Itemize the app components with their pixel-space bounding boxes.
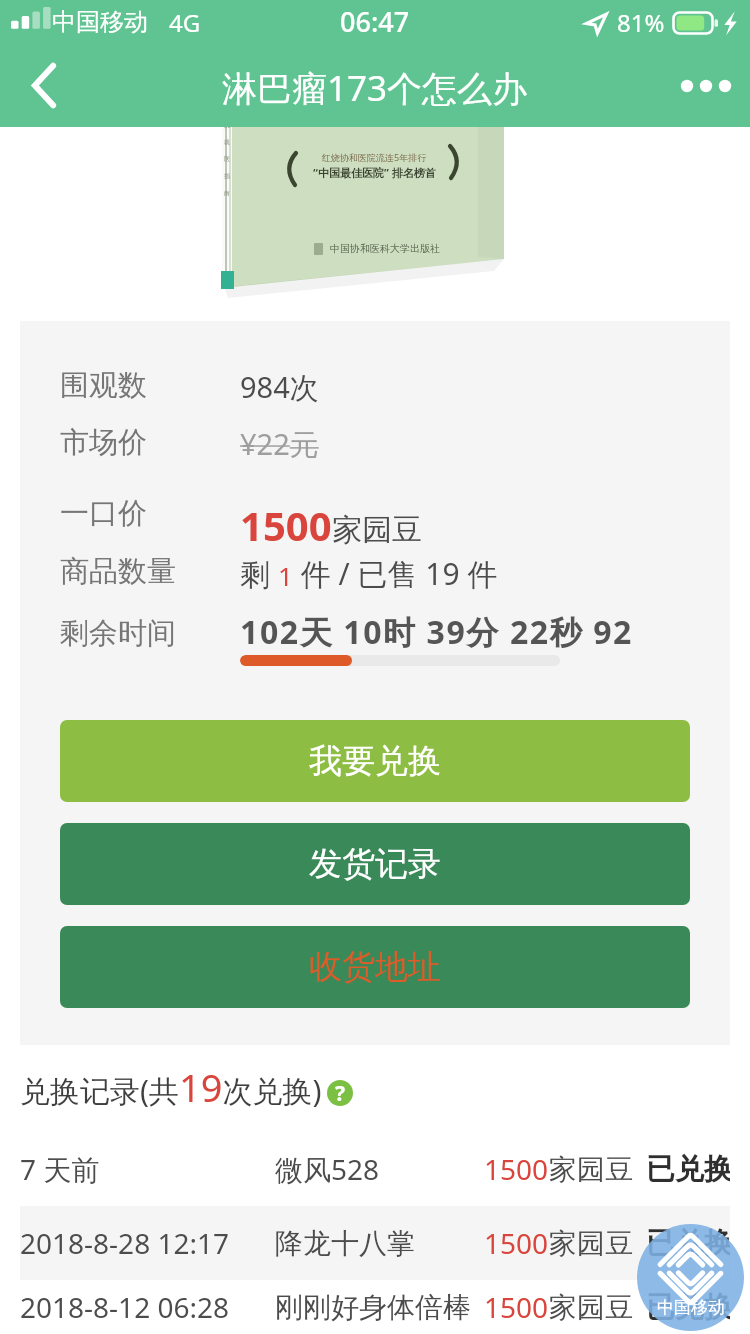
staticText: ? (335, 1080, 346, 1105)
button[interactable]: Back (0, 44, 76, 127)
staticText: 中国移动 (52, 7, 148, 37)
button[interactable]: More options (660, 44, 750, 127)
staticText: 1500 (484, 1224, 549, 1262)
staticText: 102天 10时 39分 22秒 92 (240, 610, 634, 654)
staticText: 市场价 (60, 424, 147, 461)
staticText: 商品数量 (60, 553, 176, 590)
staticText: 协 (224, 70, 230, 78)
staticText: 微风528 (275, 1150, 380, 1188)
button[interactable]: 7 天前 (20, 1132, 730, 1206)
staticText: 刚刚好身体倍棒 (275, 1290, 471, 1325)
staticText: 剩余时间 (60, 615, 176, 652)
staticText: 指 (224, 172, 230, 180)
staticText: 兑换记录(共19次兑换) (20, 1061, 322, 1113)
staticText: 2018-8-28 12:17 (20, 1224, 229, 1262)
staticText: 2018-8-12 06:28 (20, 1288, 229, 1326)
staticText: 1 (278, 558, 293, 593)
staticText: 06:47 (340, 3, 410, 40)
staticText: 1500 (484, 1150, 549, 1188)
staticText: 件 / 已售 19 件 (293, 553, 498, 594)
staticText: 家园豆 (332, 511, 422, 549)
staticText: 家园豆 (549, 1290, 633, 1325)
button[interactable]: 2018-8-12 06:28 (20, 1280, 730, 1334)
staticText: 中国协和医科大学出版社 (330, 242, 440, 255)
staticText: 1500 (240, 498, 332, 552)
button[interactable]: 发货记录 (60, 823, 690, 905)
staticText: 4G (169, 6, 201, 39)
staticText: 收货地址 (309, 946, 441, 988)
staticText: 围观数 (60, 367, 147, 404)
button[interactable]: 2018-8-28 12:17 (20, 1206, 730, 1280)
staticText: 和 (224, 87, 230, 95)
staticText: 家园豆 (549, 1226, 633, 1261)
button[interactable]: 我要兑换 (60, 720, 690, 802)
staticText: 中国移动 (657, 1297, 725, 1318)
staticText: 已兑换 (646, 1151, 730, 1188)
staticText: 7 天前 (20, 1150, 100, 1188)
staticText: 家园豆 (549, 1152, 633, 1187)
button[interactable]: Help (327, 1080, 353, 1106)
staticText: 1500 (484, 1288, 549, 1326)
staticText: 南 (224, 189, 230, 197)
button[interactable]: 收货地址 (60, 926, 690, 1008)
staticText: 81% (617, 6, 665, 39)
staticText: 院 (224, 121, 230, 129)
staticText: 我要兑换 (309, 740, 441, 782)
staticText: 已兑换 (646, 1225, 730, 1262)
staticText: 剩 (240, 553, 278, 594)
staticText: 就 (224, 138, 230, 146)
staticText: 降龙十八掌 (275, 1226, 415, 1261)
staticText: 已兑换 (646, 1289, 730, 1326)
staticText: “中国最佳医院” 排名榜首 (313, 165, 436, 180)
staticText: 一口价 (60, 495, 147, 532)
staticText: 红烧协和医院流连5年排行 (322, 151, 427, 163)
staticText: 984次 (240, 367, 319, 407)
button[interactable]: China Mobile (637, 1224, 744, 1331)
staticText: 淋巴瘤173个怎么办 (222, 64, 528, 112)
staticText: ¥22元 (240, 424, 319, 464)
staticText: 发货记录 (309, 843, 441, 885)
staticText: 医 (224, 155, 230, 163)
staticText: 医 (224, 104, 230, 112)
